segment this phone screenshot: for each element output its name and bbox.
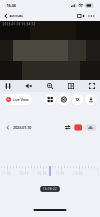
button[interactable]: Mute	[22, 80, 36, 92]
button[interactable]: Cloud storage	[84, 124, 96, 131]
button[interactable]: SIDE ROAD	[0, 12, 23, 20]
button[interactable]: Download	[85, 94, 96, 105]
staticText: Live View	[13, 97, 29, 102]
staticText: 1X	[75, 97, 80, 102]
button[interactable]: Full screen	[85, 80, 99, 92]
button[interactable]: Recordings	[74, 124, 82, 131]
staticText: 2023-01-10	[13, 125, 31, 130]
button[interactable]: Focus	[58, 94, 69, 105]
staticText: 16:38:22	[43, 187, 57, 191]
button[interactable]: Previous day	[3, 123, 12, 132]
staticText: 11:30	[1, 172, 10, 175]
staticText: 13:30	[73, 172, 82, 175]
button[interactable]: Split view	[64, 80, 78, 92]
button[interactable]: Zoom level	[72, 94, 83, 105]
button[interactable]: Pause	[1, 80, 15, 92]
staticText: 12:30	[37, 172, 46, 175]
staticText: 2023-01-10 16:34:12	[2, 22, 35, 26]
button[interactable]: More options	[86, 11, 96, 21]
button[interactable]: Filter	[63, 123, 72, 132]
button[interactable]: Zoom	[43, 80, 57, 92]
button[interactable]: Live video	[75, 12, 86, 20]
staticText: 16:34	[6, 3, 15, 8]
button[interactable]: Live View	[3, 94, 32, 105]
staticText: 12:00	[19, 172, 28, 175]
button[interactable]: Scan	[45, 94, 56, 105]
staticText: SIDE ROAD	[9, 14, 23, 18]
staticText: 13:00	[55, 172, 64, 175]
